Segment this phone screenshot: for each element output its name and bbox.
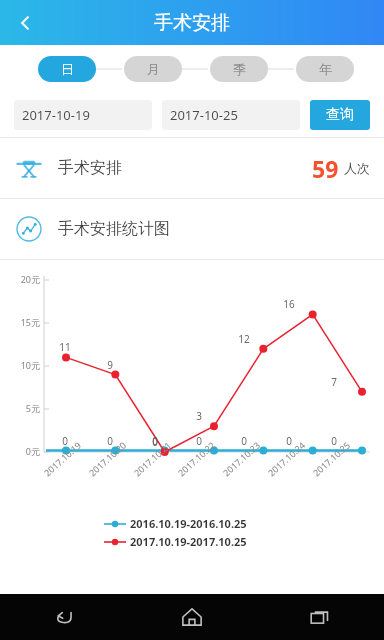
staticText: 7	[324, 375, 344, 389]
staticText: 手术安排	[154, 11, 230, 35]
staticText: 2017.10.19	[41, 438, 84, 478]
staticText: 人次	[344, 160, 370, 176]
staticText: 手术安排统计图	[58, 219, 170, 239]
staticText: 15元	[6, 316, 40, 328]
staticText: 5元	[6, 402, 40, 414]
button[interactable]: 2017-10-25	[162, 100, 300, 130]
staticText: 0	[324, 434, 344, 448]
button[interactable]: 月	[124, 56, 182, 82]
staticText: 季	[233, 61, 246, 77]
staticText: 0	[100, 434, 120, 448]
button[interactable]: 手术安排	[0, 138, 384, 198]
staticText: 2016.10.19-2016.10.25	[130, 516, 247, 531]
staticText: 0	[55, 434, 75, 448]
button[interactable]: Recent apps	[256, 594, 384, 640]
staticText: 2017.10.22	[175, 438, 218, 478]
staticText: 日	[61, 61, 74, 77]
staticText: 2017.10.21	[131, 438, 174, 478]
staticText: 10元	[6, 359, 40, 371]
staticText: 手术安排	[58, 158, 122, 178]
staticText: 9	[100, 358, 120, 372]
staticText: 11	[55, 340, 75, 354]
staticText: 2017-10-19	[22, 106, 90, 124]
staticText: 查询	[326, 106, 354, 124]
button[interactable]: 季	[210, 56, 268, 82]
staticText: 0	[145, 434, 165, 448]
staticText: 2017-10-25	[170, 106, 238, 124]
staticText: 2017.10.24	[265, 438, 308, 478]
button[interactable]: 查询	[310, 100, 370, 130]
staticText: 月	[147, 61, 160, 77]
button[interactable]: Back	[0, 594, 128, 640]
staticText: 0	[189, 434, 209, 448]
button[interactable]: Home	[128, 594, 256, 640]
staticText: 0元	[6, 445, 40, 457]
button[interactable]: Back	[6, 4, 44, 42]
staticText: 0	[234, 434, 254, 448]
staticText: 20元	[6, 273, 40, 285]
staticText: 3	[189, 409, 209, 423]
staticText: 2017.10.25	[310, 438, 353, 478]
staticText: 2017.10.20	[86, 438, 129, 478]
staticText: 16	[279, 297, 299, 311]
staticText: 12	[234, 332, 254, 346]
staticText: 59	[312, 153, 339, 184]
staticText: 2017.10.19-2017.10.25	[130, 534, 247, 549]
button[interactable]: 手术安排统计图	[0, 199, 384, 259]
staticText: 2017.10.23	[220, 438, 263, 478]
button[interactable]: 2017-10-19	[14, 100, 152, 130]
staticText: 0	[145, 435, 165, 449]
staticText: 0	[279, 434, 299, 448]
button[interactable]: 日	[38, 56, 96, 82]
staticText: 年	[319, 61, 332, 77]
button[interactable]: 年	[296, 56, 354, 82]
